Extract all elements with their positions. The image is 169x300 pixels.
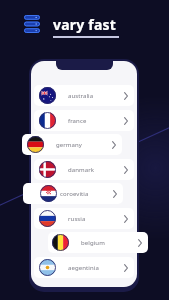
staticText: danmark — [68, 166, 95, 174]
button[interactable]: australia — [34, 85, 134, 106]
staticText: germany — [56, 141, 82, 149]
staticText: coroevitia — [60, 190, 89, 198]
button[interactable]: coroevitia — [23, 183, 123, 204]
button[interactable]: aegentinia — [34, 257, 134, 278]
button[interactable]: belgium — [48, 232, 148, 253]
button[interactable]: danmark — [34, 159, 134, 180]
button[interactable]: france — [34, 110, 134, 131]
staticText: vary fast — [53, 15, 116, 34]
staticText: belgium — [81, 239, 105, 247]
button[interactable]: russia — [34, 208, 134, 229]
staticText: russia — [68, 215, 86, 223]
staticText: france — [68, 117, 87, 125]
button[interactable]: germany — [22, 134, 122, 155]
staticText: aegentinia — [68, 264, 99, 272]
staticText: australia — [68, 92, 94, 100]
